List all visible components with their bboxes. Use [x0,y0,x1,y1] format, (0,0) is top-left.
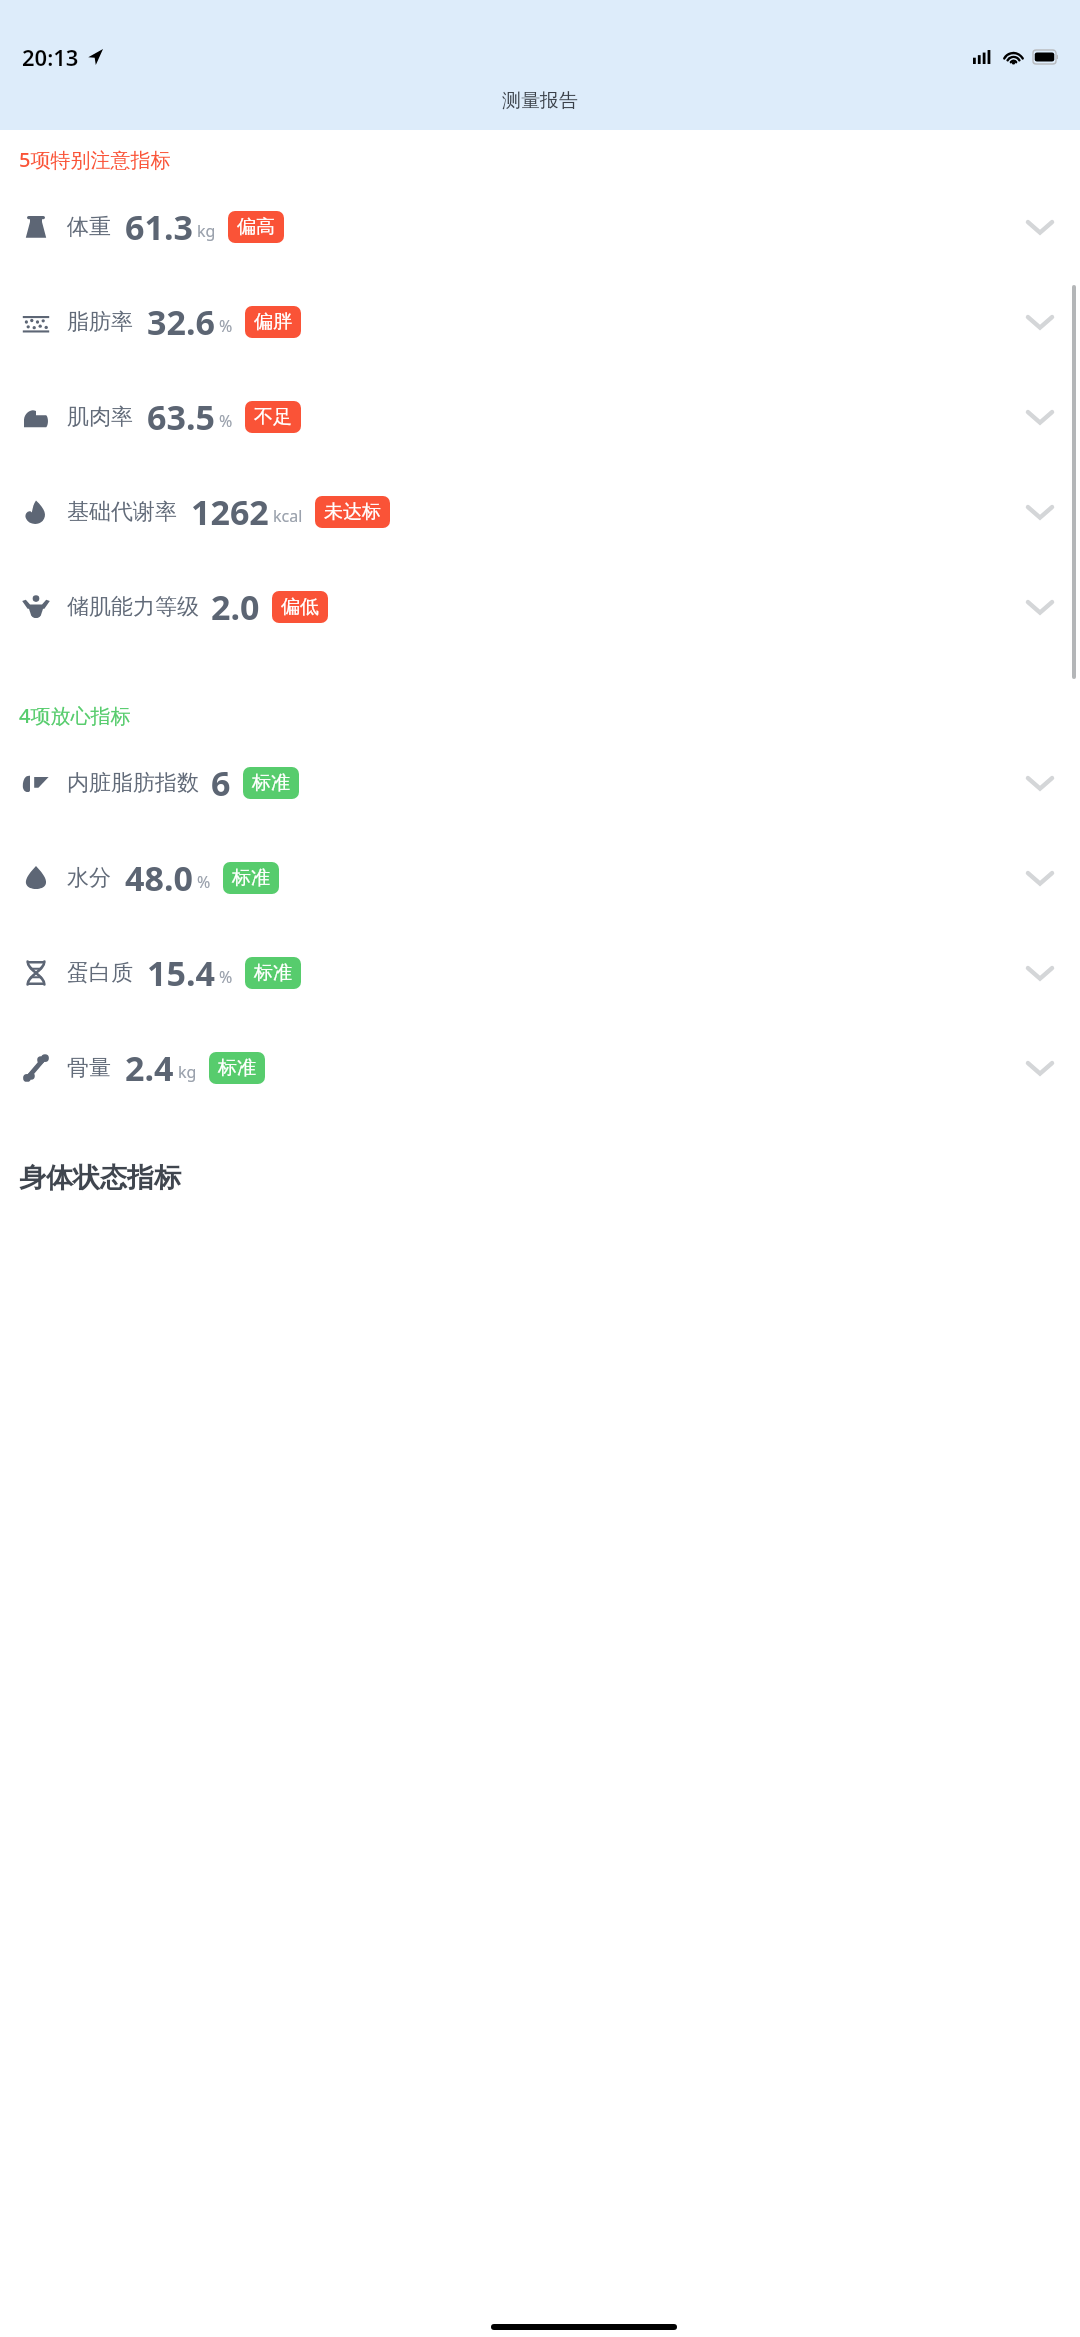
staticText: 2.0 [211,584,260,630]
staticText: 水分 [67,864,111,892]
staticText: % [219,966,233,988]
staticText: 5项特别注意指标 [19,146,171,173]
staticText: 脂肪率 [67,308,133,336]
staticText: 1262 [191,489,269,535]
staticText: 15.4 [147,950,215,996]
button[interactable]: 骨量 [0,1020,1080,1115]
staticText: 基础代谢率 [67,498,177,526]
staticText: 测量报告 [502,89,578,113]
button[interactable]: 肌肉率 [0,369,1080,464]
staticText: 不足 [254,405,292,429]
staticText: 48.0 [125,855,193,901]
staticText: 20:13 [22,42,79,72]
button[interactable]: 体重 [0,179,1080,274]
button[interactable]: 蛋白质 [0,925,1080,1020]
staticText: 2.4 [125,1045,174,1091]
staticText: % [219,410,233,432]
staticText: 标准 [252,771,290,795]
button[interactable]: 展开 储肌能力等级 [1018,585,1062,629]
staticText: 偏低 [281,595,319,619]
button[interactable]: 展开 水分 [1018,856,1062,900]
staticText: 偏高 [237,215,275,239]
staticText: 标准 [218,1056,256,1080]
staticText: 4项放心指标 [19,702,131,729]
staticText: % [197,871,211,893]
staticText: 标准 [232,866,270,890]
button[interactable]: 展开 脂肪率 [1018,300,1062,344]
staticText: % [219,315,233,337]
staticText: 32.6 [147,299,215,345]
staticText: kg [197,220,216,242]
button[interactable]: 脂肪率 [0,274,1080,369]
staticText: 未达标 [324,500,381,524]
staticText: 肌肉率 [67,403,133,431]
staticText: 63.5 [147,394,215,440]
staticText: kg [178,1061,197,1083]
button[interactable]: 基础代谢率 [0,464,1080,559]
staticText: 6 [211,760,231,806]
button[interactable]: 展开 蛋白质 [1018,951,1062,995]
button[interactable]: 展开 肌肉率 [1018,395,1062,439]
staticText: 标准 [254,961,292,985]
button[interactable]: 内脏脂肪指数 [0,735,1080,830]
staticText: 储肌能力等级 [67,593,199,621]
staticText: kcal [273,505,303,527]
button[interactable]: 展开 内脏脂肪指数 [1018,761,1062,805]
button[interactable]: 展开 体重 [1018,205,1062,249]
staticText: 骨量 [67,1054,111,1082]
button[interactable]: 展开 骨量 [1018,1046,1062,1090]
button[interactable]: 储肌能力等级 [0,559,1080,654]
button[interactable]: 水分 [0,830,1080,925]
staticText: 61.3 [125,204,193,250]
staticText: 体重 [67,213,111,241]
staticText: 身体状态指标 [19,1161,181,1195]
staticText: 内脏脂肪指数 [67,769,199,797]
button[interactable]: 展开 基础代谢率 [1018,490,1062,534]
staticText: 偏胖 [254,310,292,334]
staticText: 蛋白质 [67,959,133,987]
